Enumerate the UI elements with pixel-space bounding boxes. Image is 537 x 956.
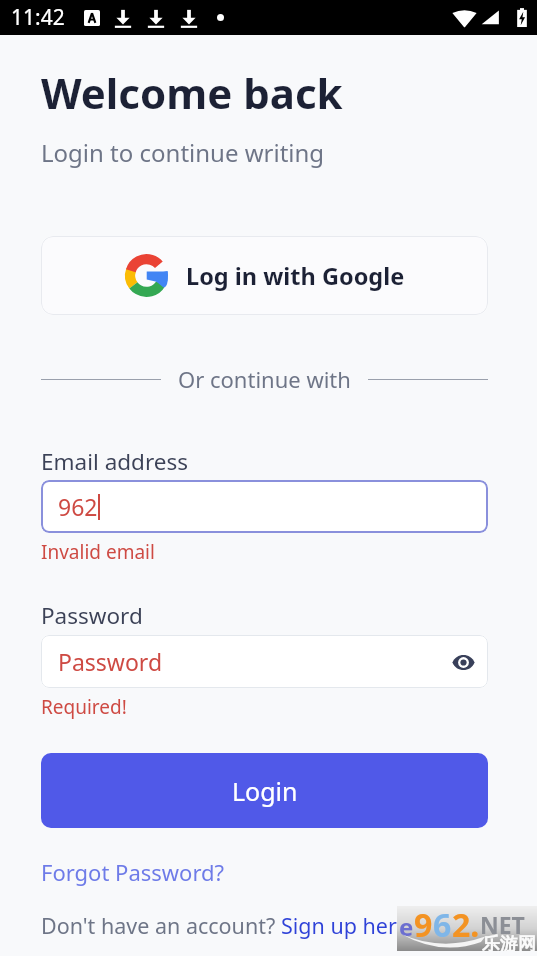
staticText: Password [58,646,163,677]
staticText: Login to continue writing [41,136,325,169]
button[interactable]: Password [41,635,488,688]
staticText: Login [232,774,298,808]
staticText: Password [41,600,143,631]
staticText: 乐游网 [482,933,536,951]
staticText: e [399,910,414,943]
staticText: 2. [452,903,480,947]
staticText: Or continue with [178,364,351,394]
staticText: 6 [433,903,452,947]
staticText: 962 [58,491,98,522]
button[interactable]: Log in with Google [41,236,488,315]
button[interactable]: Forgot Password? [41,857,225,887]
staticText: Welcome back [41,64,343,121]
staticText: 11:42 [11,3,65,32]
staticText: Invalid email [41,539,155,565]
staticText: Sign up here [281,911,409,940]
button[interactable]: 962 [41,480,488,533]
staticText: Required! [41,694,127,720]
staticText: NET [480,909,525,940]
staticText: 9 [414,903,433,947]
button[interactable]: Login [41,753,488,828]
button[interactable]: Show password [448,647,478,677]
staticText: Don't have an account? [41,911,281,940]
button[interactable]: Sign up here [281,911,409,940]
staticText: Email address [41,446,189,477]
staticText: Log in with Google [186,260,405,292]
staticText: Forgot Password? [41,857,225,887]
